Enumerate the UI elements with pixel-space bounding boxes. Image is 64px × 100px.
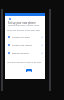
staticText: Set up your new phone (8, 21, 36, 24)
staticText: Select the account to use with apps (7, 29, 41, 32)
other: Completed (41, 36, 43, 38)
staticText: Follow these steps to finish setup (8, 24, 40, 27)
staticText: Confirm your identity (12, 44, 33, 47)
other: Completed (41, 44, 43, 46)
button[interactable]: NEXT (26, 69, 32, 72)
staticText: Your work phone is ready to be used (7, 61, 42, 64)
button[interactable]: Confirm your identity (5, 41, 45, 49)
button[interactable]: Connect your bank (5, 33, 45, 41)
other: Completed (41, 52, 43, 54)
staticText: NEXT (27, 70, 32, 72)
staticText: Register payment (12, 52, 29, 55)
button[interactable]: Register payment (5, 49, 45, 57)
staticText: Connect your bank (12, 36, 30, 39)
